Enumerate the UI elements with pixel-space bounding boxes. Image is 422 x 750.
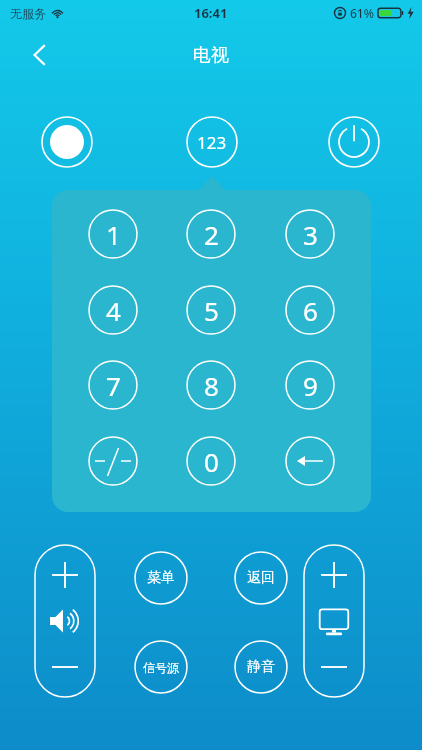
staticText: 0: [204, 444, 219, 479]
button[interactable]: 8: [186, 360, 236, 410]
button[interactable]: Power toggle: [41, 116, 93, 168]
button[interactable]: Power: [328, 116, 380, 168]
button[interactable]: Volume down: [34, 642, 96, 692]
button[interactable]: Volume up: [34, 550, 96, 600]
staticText: 电视: [193, 44, 229, 67]
staticText: 信号源: [143, 660, 179, 675]
button[interactable]: Dash: [88, 436, 138, 486]
button[interactable]: 返回: [234, 551, 288, 605]
button[interactable]: 5: [186, 285, 236, 335]
button[interactable]: Back: [22, 36, 60, 74]
button[interactable]: 1: [88, 209, 138, 259]
staticText: 无服务: [10, 6, 46, 21]
staticText: 4: [106, 293, 121, 328]
button[interactable]: 0: [186, 436, 236, 486]
button[interactable]: 123: [186, 116, 238, 168]
staticText: 8: [204, 368, 219, 403]
staticText: 3: [303, 217, 318, 252]
button[interactable]: 6: [285, 285, 335, 335]
staticText: 返回: [247, 569, 275, 587]
button[interactable]: 信号源: [134, 640, 188, 694]
button[interactable]: Backspace: [285, 436, 335, 486]
staticText: 7: [106, 368, 121, 403]
button[interactable]: Channel up: [303, 550, 365, 600]
staticText: 1: [106, 217, 121, 252]
button[interactable]: 9: [285, 360, 335, 410]
staticText: 16:41: [194, 4, 228, 22]
staticText: 2: [204, 217, 219, 252]
button[interactable]: 静音: [234, 640, 288, 694]
staticText: 6: [303, 293, 318, 328]
button[interactable]: 菜单: [134, 551, 188, 605]
staticText: 5: [204, 293, 219, 328]
staticText: 123: [197, 131, 227, 154]
button[interactable]: 3: [285, 209, 335, 259]
button[interactable]: Volume: [34, 598, 96, 644]
button[interactable]: Channel down: [303, 642, 365, 692]
button[interactable]: TV source: [303, 598, 365, 644]
button[interactable]: 2: [186, 209, 236, 259]
staticText: 菜单: [147, 569, 175, 587]
staticText: 61%: [350, 5, 374, 21]
button[interactable]: 7: [88, 360, 138, 410]
button[interactable]: 4: [88, 285, 138, 335]
staticText: 9: [303, 368, 318, 403]
staticText: 静音: [247, 658, 275, 676]
